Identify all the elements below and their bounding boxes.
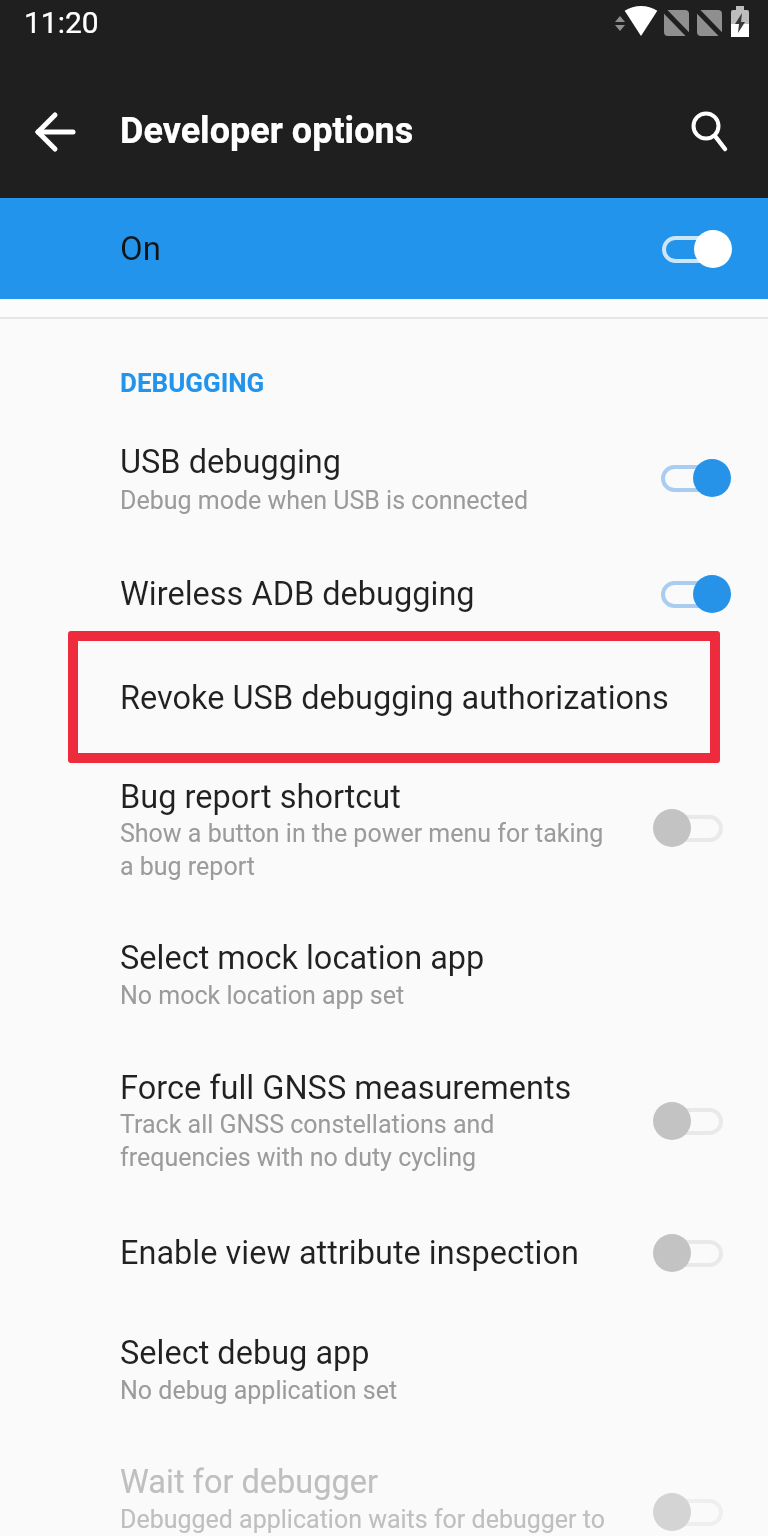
staticText: 11:20 (24, 5, 99, 40)
staticText: USB debugging (120, 443, 342, 481)
staticText: Show a button in the power menu for taki… (120, 819, 604, 881)
button[interactable] (0, 925, 768, 1025)
button[interactable] (0, 560, 768, 630)
button[interactable] (0, 1320, 768, 1420)
staticText: Enable view attribute inspection (120, 1234, 579, 1272)
button[interactable] (0, 1220, 768, 1290)
button[interactable] (0, 765, 768, 895)
staticText: Select debug app (120, 1334, 370, 1372)
staticText: Force full GNSS measurements (120, 1069, 572, 1107)
staticText: Revoke USB debugging authorizations (120, 679, 669, 717)
button[interactable] (0, 430, 768, 530)
button[interactable] (0, 1055, 768, 1185)
button[interactable] (26, 102, 86, 162)
staticText: Wireless ADB debugging (120, 575, 475, 613)
staticText: On (120, 229, 161, 268)
button[interactable] (0, 1450, 768, 1536)
staticText: Debugged application waits for debugger … (120, 1505, 605, 1534)
button[interactable] (680, 100, 740, 160)
staticText: Bug report shortcut (120, 778, 401, 816)
staticText: Track all GNSS constellations and freque… (120, 1110, 495, 1172)
button[interactable]: On (0, 198, 768, 299)
staticText: No debug application set (120, 1376, 398, 1405)
staticText: Wait for debugger (120, 1463, 378, 1501)
staticText: Select mock location app (120, 939, 485, 977)
button[interactable] (0, 655, 768, 741)
staticText: Debug mode when USB is connected (120, 486, 529, 515)
staticText: Developer options (120, 110, 414, 152)
staticText: No mock location app set (120, 981, 405, 1010)
staticText: DEBUGGING (120, 368, 265, 398)
